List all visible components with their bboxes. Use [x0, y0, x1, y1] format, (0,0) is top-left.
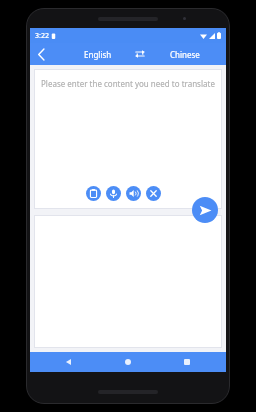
- button[interactable]: Swap languages: [129, 43, 151, 65]
- button[interactable]: Recent apps: [167, 352, 207, 372]
- staticText: English: [84, 49, 112, 60]
- button[interactable]: Back: [49, 352, 89, 372]
- button[interactable]: Chinese: [164, 43, 206, 65]
- staticText: Chinese: [170, 49, 200, 60]
- staticText: Please enter the content you need to tra…: [41, 78, 215, 89]
- button[interactable]: Speak: [126, 186, 141, 201]
- button[interactable]: Back: [30, 43, 52, 65]
- button[interactable]: English: [78, 43, 118, 65]
- button[interactable]: Send: [192, 197, 218, 223]
- button[interactable]: Clear: [146, 186, 161, 201]
- button[interactable]: Paste: [86, 186, 101, 201]
- staticText: 3:22: [35, 31, 49, 41]
- button[interactable]: Home: [108, 352, 148, 372]
- button[interactable]: Voice input: [106, 186, 121, 201]
